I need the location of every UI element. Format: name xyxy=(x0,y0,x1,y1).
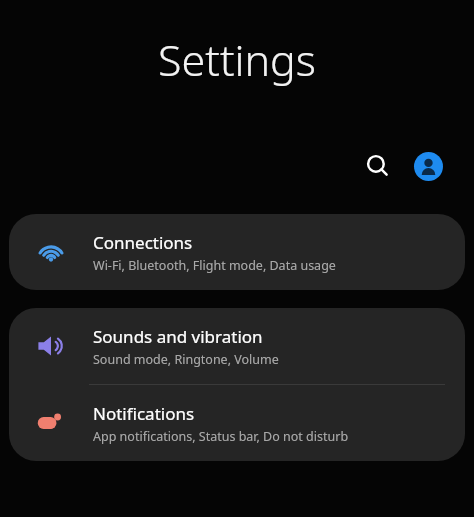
staticText: Notifications xyxy=(93,402,195,425)
staticText: Sounds and vibration xyxy=(93,325,263,348)
staticText: Settings xyxy=(158,30,316,89)
staticText: Connections xyxy=(93,231,193,254)
button[interactable]: Account xyxy=(406,144,450,188)
staticText: Wi-Fi, Bluetooth, Flight mode, Data usag… xyxy=(93,257,336,274)
staticText: Sound mode, Ringtone, Volume xyxy=(93,351,279,368)
staticText: App notifications, Status bar, Do not di… xyxy=(93,428,349,445)
button[interactable]: Search xyxy=(356,144,400,188)
button[interactable]: Sounds and vibration xyxy=(9,308,465,384)
button[interactable]: Notifications xyxy=(9,385,465,461)
button[interactable]: Connections xyxy=(9,214,465,290)
